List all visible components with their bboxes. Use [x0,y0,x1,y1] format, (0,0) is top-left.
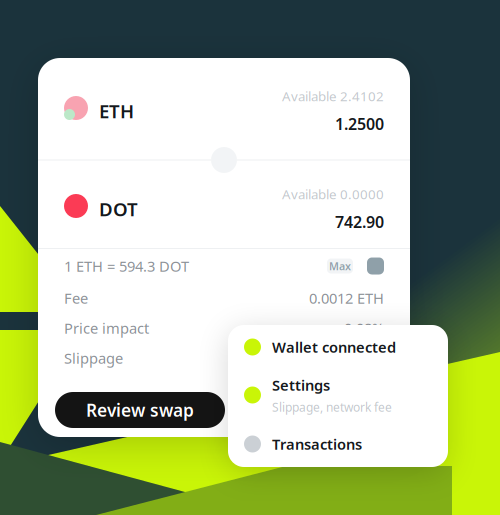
button[interactable]: Settings [228,369,448,421]
button[interactable]: Review swap [55,392,225,428]
staticText: 1.2500 [335,113,384,135]
button[interactable]: Max [327,258,353,273]
staticText: 742.90 [335,211,384,233]
staticText: 0.5% [352,348,384,368]
staticText: 0.08% [344,318,384,338]
staticText: Review swap [86,398,194,422]
staticText: Slippage [64,348,123,368]
staticText: Available 0.0000 [282,185,384,203]
staticText: Fee [64,288,88,308]
staticText: ETH [99,98,134,124]
staticText: 0.0012 ETH [309,288,384,308]
button[interactable]: Swap tokens [211,147,237,173]
staticText: Wallet connected [272,337,396,357]
staticText: Slippage, network fee [272,399,392,415]
button[interactable]: Settings [367,257,384,274]
staticText: 1 ETH = 594.3 DOT [64,256,189,276]
staticText: Price impact [64,318,149,338]
staticText: Settings [272,375,330,395]
staticText: Transactions [272,434,362,454]
button[interactable]: Wallet connected [228,325,448,369]
staticText: DOT [99,196,138,222]
staticText: Max [329,259,351,273]
staticText: Available 2.4102 [282,87,384,105]
button[interactable]: Transactions [228,421,448,467]
